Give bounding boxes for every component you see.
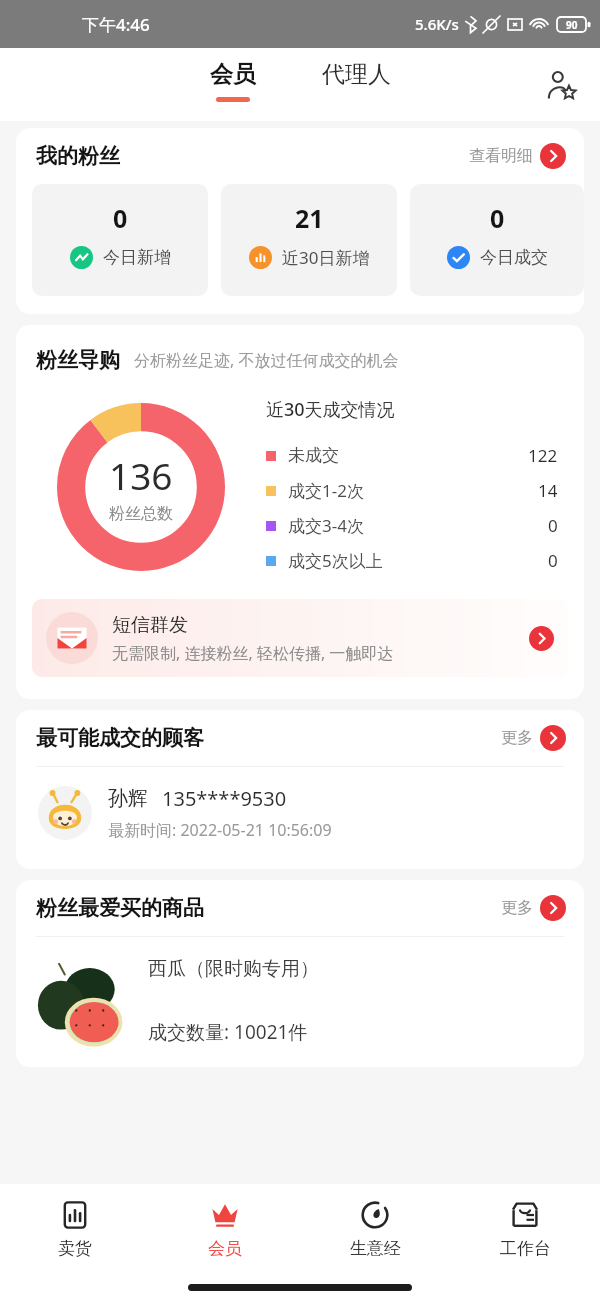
staticText: 代理人: [322, 60, 391, 89]
button[interactable]: 粉丝最爱买的商品: [16, 880, 584, 936]
button[interactable]: 会员: [150, 1184, 300, 1274]
staticText: 成交数量: 10021件: [148, 1019, 308, 1045]
staticText: 短信群发: [112, 613, 188, 637]
staticText: 成交3-4次: [288, 514, 364, 537]
staticText: 0: [113, 201, 128, 235]
button[interactable]: 0: [32, 184, 208, 296]
button[interactable]: 孙辉: [16, 767, 584, 859]
staticText: 粉丝最爱买的商品: [36, 895, 204, 921]
staticText: 更多: [501, 728, 533, 748]
staticText: 21: [295, 201, 324, 235]
button[interactable]: 我的会员: [538, 62, 584, 108]
button[interactable]: 生意经: [300, 1184, 450, 1274]
staticText: 西瓜（限时购专用）: [148, 957, 319, 981]
staticText: 孙辉: [108, 786, 148, 811]
button[interactable]: 0: [410, 184, 584, 296]
staticText: 更多: [501, 898, 533, 918]
staticText: 0: [548, 514, 558, 537]
button[interactable]: 短信群发: [32, 599, 568, 677]
staticText: 90: [566, 18, 578, 32]
staticText: 最新时间: 2022-05-21 10:56:09: [108, 819, 332, 841]
staticText: 会员: [210, 60, 256, 89]
staticText: 分析粉丝足迹, 不放过任何成交的机会: [134, 349, 399, 371]
staticText: 近30天成交情况: [266, 397, 395, 422]
staticText: 0: [548, 549, 558, 572]
staticText: 成交5次以上: [288, 549, 383, 572]
staticText: 未成交: [288, 445, 339, 466]
button[interactable]: 我的粉丝: [16, 128, 584, 184]
staticText: 136: [109, 450, 173, 500]
staticText: 下午4:46: [82, 13, 150, 36]
staticText: 卖货: [58, 1238, 92, 1259]
staticText: 122: [528, 444, 558, 467]
staticText: 生意经: [350, 1238, 401, 1259]
staticText: 查看明细: [469, 146, 533, 166]
button[interactable]: 会员: [198, 60, 268, 102]
staticText: 14: [538, 479, 558, 502]
staticText: 0: [490, 201, 505, 235]
staticText: 今日成交: [480, 247, 548, 268]
staticText: 无需限制, 连接粉丝, 轻松传播, 一触即达: [112, 642, 394, 664]
staticText: 粉丝总数: [109, 504, 173, 524]
staticText: 我的粉丝: [36, 143, 120, 169]
staticText: 最可能成交的顾客: [36, 725, 204, 751]
staticText: 成交1-2次: [288, 479, 364, 502]
button[interactable]: 工作台: [450, 1184, 600, 1274]
staticText: 粉丝导购: [36, 347, 120, 373]
button[interactable]: 21: [221, 184, 397, 296]
staticText: 会员: [208, 1238, 242, 1259]
staticText: 工作台: [500, 1238, 551, 1259]
button[interactable]: 代理人: [310, 60, 403, 102]
staticText: 今日新增: [103, 247, 171, 268]
button[interactable]: 最可能成交的顾客: [16, 710, 584, 766]
button[interactable]: 卖货: [0, 1184, 150, 1274]
button[interactable]: 西瓜（限时购专用）: [16, 937, 584, 1067]
staticText: 近30日新增: [282, 246, 370, 269]
staticText: 5.6K/s: [415, 14, 459, 34]
staticText: 135****9530: [162, 785, 287, 812]
